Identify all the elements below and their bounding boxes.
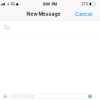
staticText: 9:04 PM (42, 2, 57, 6)
staticText: 27% (81, 2, 88, 6)
button[interactable]: To: (0, 21, 100, 33)
button[interactable]: Send (88, 94, 92, 98)
staticText: Text Message (11, 94, 35, 99)
staticText: Cancel (75, 11, 92, 17)
button[interactable]: Add media (3, 94, 8, 99)
staticText: ..ıl 4G (6, 2, 15, 6)
staticText: To: (3, 25, 10, 31)
button[interactable]: Cancel (73, 9, 93, 20)
staticText: New Message (26, 11, 60, 17)
